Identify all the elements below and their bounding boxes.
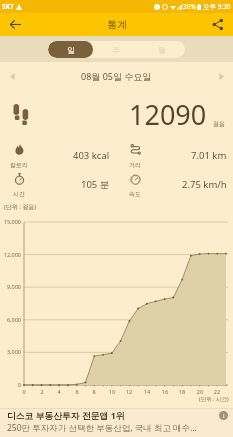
staticText: 속도 xyxy=(129,190,141,198)
staticText: 18 xyxy=(176,388,188,395)
staticText: 0 xyxy=(0,381,21,388)
staticText: 일 xyxy=(67,45,75,55)
staticText: (단위 : 시간) xyxy=(199,395,229,403)
button[interactable]: 거리 xyxy=(116,138,233,167)
staticText: 2.75 km/h xyxy=(182,178,227,191)
staticText: 10 xyxy=(106,388,118,395)
button[interactable]: 칼로리 xyxy=(0,138,116,167)
staticText: 0 xyxy=(18,388,30,395)
staticText: 6,000 xyxy=(0,316,21,323)
staticText: 403 kcal xyxy=(73,149,110,162)
button[interactable]: 일 xyxy=(48,41,93,58)
staticText: 거리 xyxy=(129,161,141,169)
button[interactable]: 속도 xyxy=(116,167,233,196)
staticText: 오후 9:36 xyxy=(203,2,231,11)
staticText: 3,000 xyxy=(0,348,21,355)
button[interactable]: Ad info xyxy=(219,411,228,420)
staticText: 12090 xyxy=(129,96,207,133)
staticText: 걸음 xyxy=(213,120,225,128)
staticText: 16 xyxy=(159,388,171,395)
staticText: 22 xyxy=(211,388,223,395)
staticText: 14 xyxy=(141,388,153,395)
staticText: 2 xyxy=(36,388,48,395)
staticText: 4 xyxy=(53,388,65,395)
staticText: 38% xyxy=(183,2,196,11)
staticText: 105 분 xyxy=(81,178,110,191)
staticText: 9,000 xyxy=(0,283,21,290)
staticText: 6 xyxy=(71,388,83,395)
button[interactable]: Previous day xyxy=(0,64,24,88)
staticText: SKT xyxy=(2,2,14,11)
staticText: 12,000 xyxy=(0,251,21,258)
button[interactable]: 디스코 부동산투자 전문앱 1위 xyxy=(0,408,233,437)
staticText: 디스코 부동산투자 전문앱 1위 xyxy=(7,410,125,422)
button[interactable]: Next day xyxy=(209,64,233,88)
staticText: 250만 투자자가 선택한 부동산업, 국내 최고 매수… xyxy=(7,422,197,434)
staticText: 15,000 xyxy=(0,218,21,225)
staticText: 월 xyxy=(158,45,166,55)
staticText: 칼로리 xyxy=(10,161,28,169)
staticText: 8 xyxy=(88,388,100,395)
staticText: 20 xyxy=(194,388,206,395)
button[interactable]: Share xyxy=(206,13,229,36)
staticText: 시간 xyxy=(13,190,25,198)
staticText: i xyxy=(223,412,225,420)
staticText: 08월 05일 수요일 xyxy=(81,70,152,82)
button[interactable]: 월 xyxy=(139,41,185,58)
staticText: 주 xyxy=(112,45,120,55)
staticText: 통계 xyxy=(107,18,127,31)
staticText: 12 xyxy=(123,388,135,395)
button[interactable]: Back xyxy=(4,13,27,36)
staticText: 7.01 km xyxy=(191,149,227,162)
staticText: (단위 : 걸음) xyxy=(4,203,37,211)
button[interactable]: 시간 xyxy=(0,167,116,196)
